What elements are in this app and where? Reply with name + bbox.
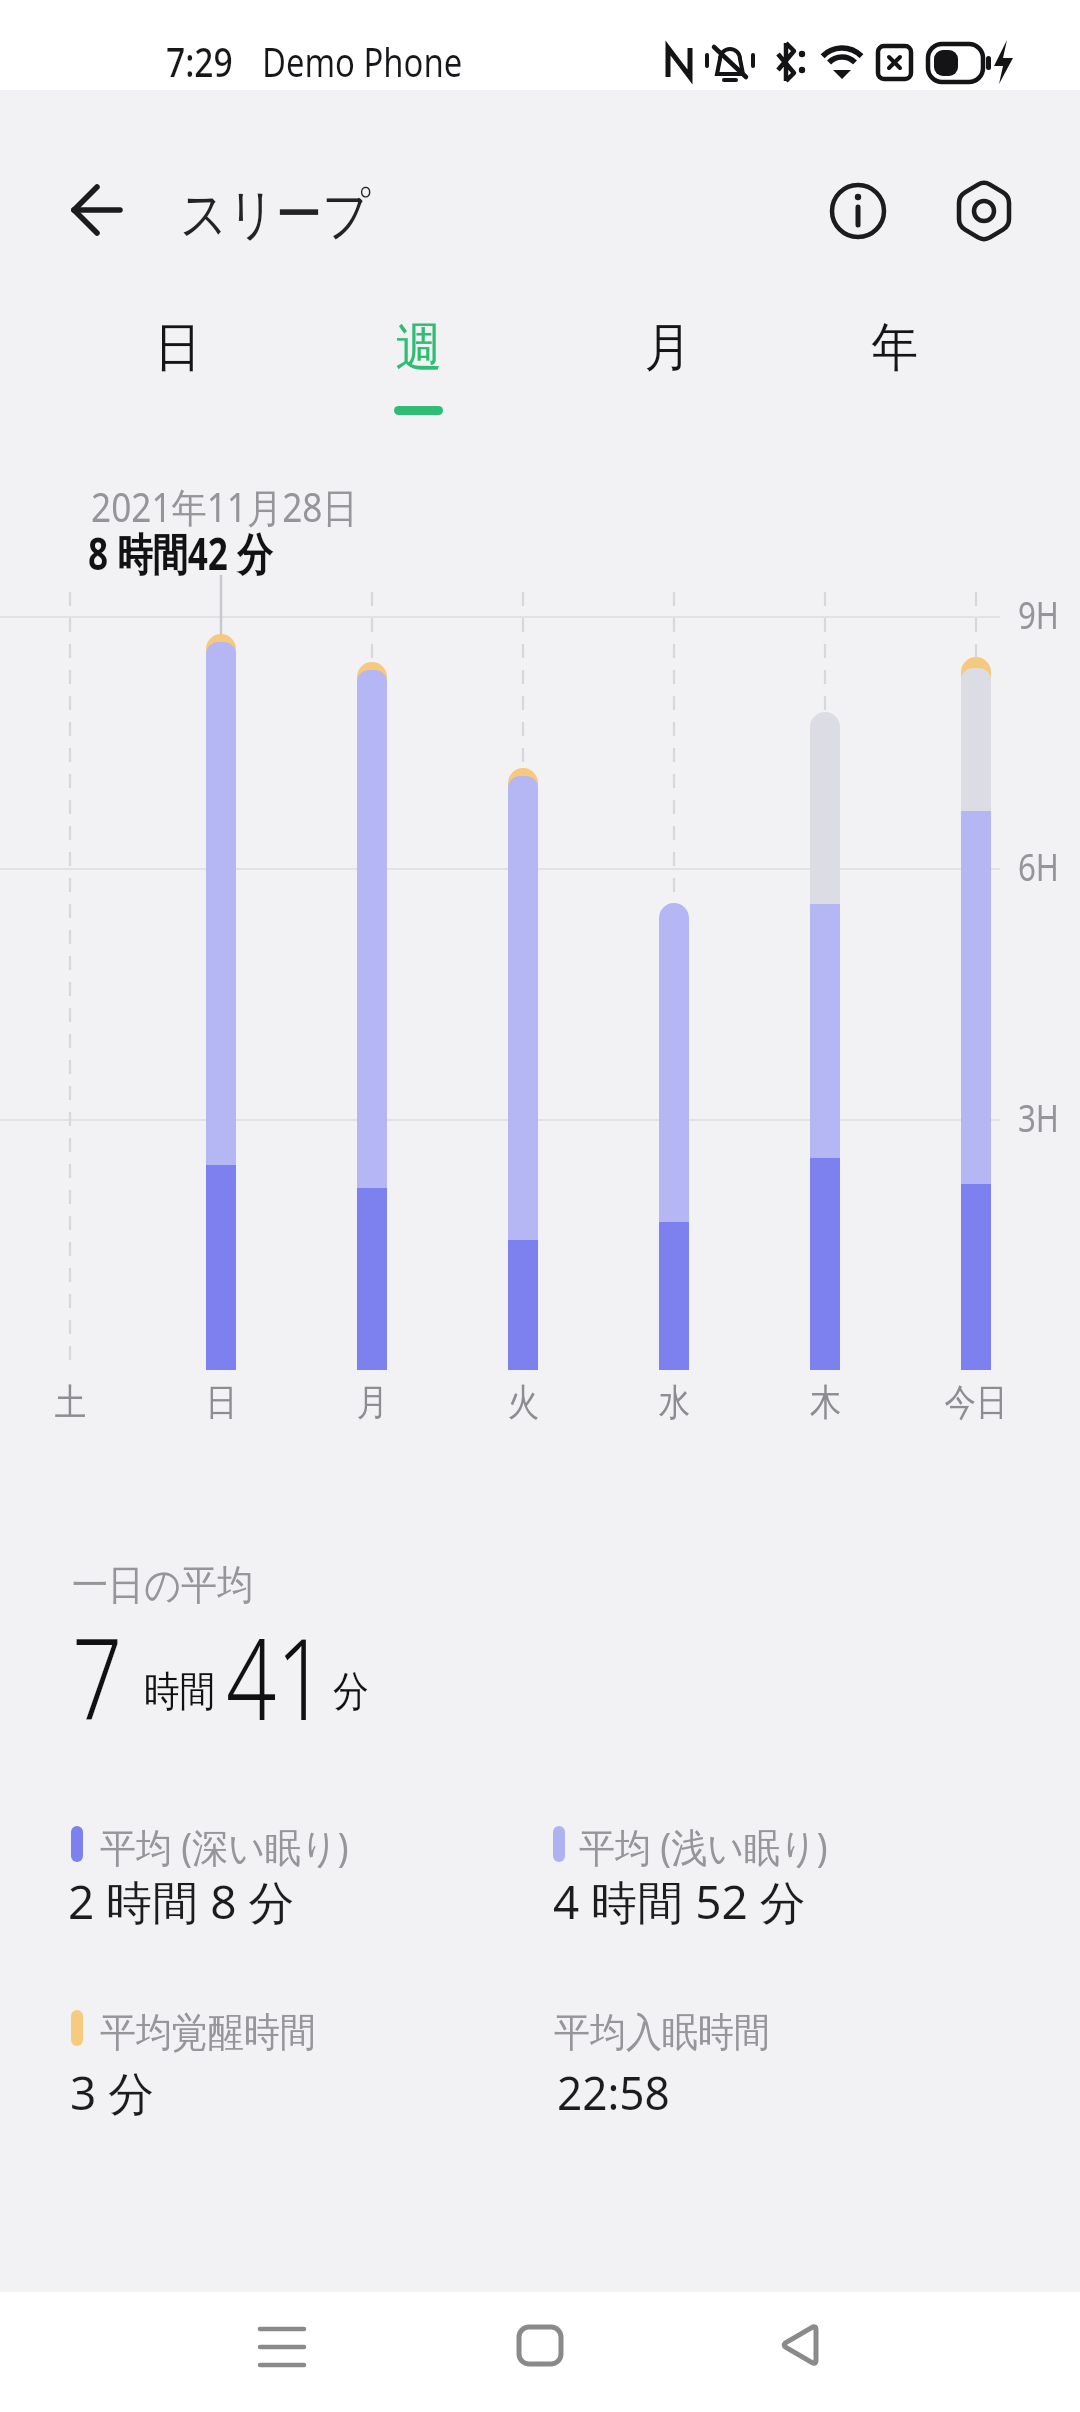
- staticText: 平均 (深い眠り): [100, 1819, 349, 1874]
- staticText: 月: [645, 315, 691, 381]
- staticText: 火: [508, 1379, 539, 1426]
- staticText: 一日の平均: [72, 1560, 253, 1612]
- staticText: 水: [659, 1379, 690, 1426]
- staticText: 土: [55, 1379, 86, 1426]
- staticText: 月: [357, 1379, 388, 1426]
- staticText: 木: [810, 1379, 841, 1426]
- button[interactable]: [480, 2287, 600, 2407]
- staticText: 41: [226, 1599, 327, 1753]
- staticText: 3H: [1018, 1090, 1060, 1143]
- staticText: 平均入眠時間: [554, 2007, 770, 2057]
- staticText: 平均覚醒時間: [100, 2007, 316, 2057]
- staticText: 9H: [1018, 587, 1060, 640]
- staticText: 3 分: [70, 2061, 155, 2124]
- button[interactable]: [222, 2287, 342, 2407]
- button[interactable]: [339, 300, 499, 420]
- button[interactable]: [738, 2287, 858, 2407]
- staticText: 2021年11月28日: [91, 479, 358, 534]
- button[interactable]: [588, 300, 748, 420]
- staticText: 7:29: [166, 34, 233, 88]
- staticText: 8 時間42 分: [88, 523, 273, 583]
- staticText: 日: [206, 1379, 237, 1426]
- staticText: 日: [155, 315, 201, 381]
- staticText: 今日: [944, 1379, 1007, 1426]
- staticText: 4 時間 52 分: [553, 1870, 806, 1933]
- staticText: 22:58: [557, 2061, 670, 2124]
- staticText: 6H: [1018, 839, 1060, 892]
- staticText: 7: [72, 1599, 123, 1753]
- staticText: 週: [396, 315, 442, 381]
- staticText: スリープ: [180, 180, 370, 249]
- button[interactable]: [98, 300, 258, 420]
- staticText: 年: [872, 315, 918, 381]
- staticText: 時間: [144, 1666, 215, 1719]
- staticText: 2 時間 8 分: [68, 1870, 295, 1933]
- button[interactable]: [58, 172, 134, 248]
- staticText: Demo Phone: [262, 34, 463, 88]
- button[interactable]: [824, 177, 892, 245]
- button[interactable]: [950, 177, 1018, 245]
- staticText: 分: [333, 1666, 369, 1719]
- staticText: 平均 (浅い眠り): [579, 1819, 828, 1874]
- button[interactable]: [815, 300, 975, 420]
